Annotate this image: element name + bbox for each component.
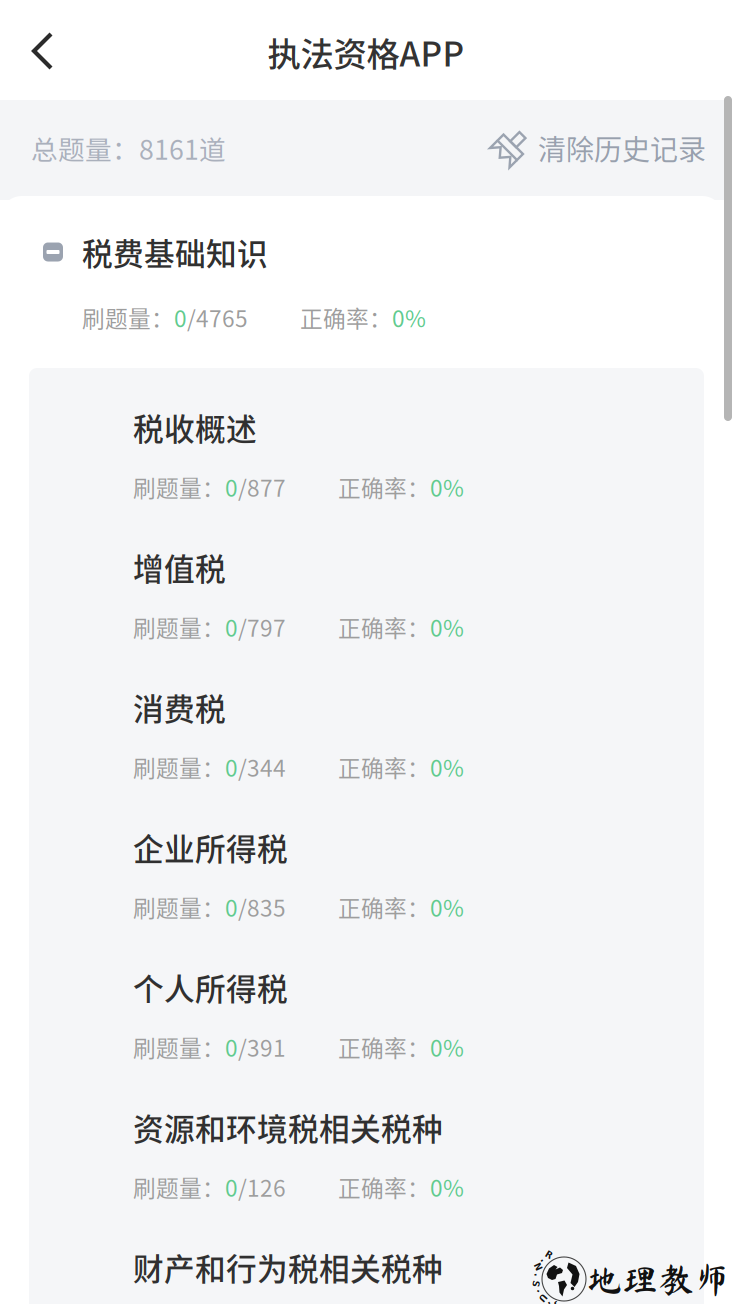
staticText: 0 — [225, 470, 238, 503]
button[interactable]: 税费基础知识 — [0, 237, 700, 267]
button[interactable]: 财产和行为税相关税种 — [133, 1245, 693, 1304]
staticText: /835 — [238, 890, 286, 923]
staticText: N — [534, 1262, 542, 1272]
staticText: · — [534, 1270, 538, 1280]
staticText: 0% — [430, 750, 464, 783]
staticText: 税费基础知识 — [82, 230, 268, 274]
staticText: 刷题量： — [133, 1170, 225, 1203]
staticText: 清除历史记录 — [538, 128, 706, 168]
staticText: 0% — [392, 301, 426, 334]
staticText: 0 — [225, 750, 238, 783]
staticText: 增值税 — [133, 545, 226, 589]
staticText: 正确率： — [338, 890, 430, 923]
staticText: /391 — [238, 1030, 286, 1063]
staticText: 0% — [430, 890, 464, 923]
staticText: 刷题量： — [133, 750, 225, 783]
staticText: /344 — [238, 750, 286, 783]
staticText: 0% — [430, 1030, 464, 1063]
button[interactable]: 税收概述 — [133, 405, 693, 545]
staticText: 正确率： — [338, 1170, 430, 1203]
staticText: J — [555, 1301, 558, 1304]
staticText: 0 — [225, 1170, 238, 1203]
button[interactable]: 企业所得税 — [133, 825, 693, 965]
staticText: 总题量：8161道 — [31, 129, 226, 167]
staticText: 刷题量： — [133, 470, 225, 503]
staticText: S — [532, 1278, 539, 1289]
staticText: · — [536, 1286, 540, 1297]
staticText: 刷题量： — [82, 301, 174, 334]
button[interactable]: 增值税 — [133, 545, 693, 685]
button[interactable]: 消费税 — [133, 685, 693, 825]
staticText: 正确率： — [338, 1030, 430, 1063]
staticText: · — [547, 1298, 551, 1304]
button[interactable]: 个人所得税 — [133, 965, 693, 1105]
staticText: 0 — [225, 610, 238, 643]
staticText: /877 — [238, 470, 286, 503]
staticText: 刷题量： — [133, 890, 225, 923]
staticText: 正确率： — [338, 610, 430, 643]
staticText: 正确率： — [338, 750, 430, 783]
staticText: 财产和行为税相关税种 — [133, 1245, 443, 1289]
staticText: 正确率： — [338, 470, 430, 503]
staticText: 0 — [174, 301, 187, 334]
button[interactable]: 返回 — [0, 10, 54, 90]
staticText: 刷题量： — [133, 610, 225, 643]
staticText: 个人所得税 — [133, 965, 288, 1009]
staticText: /4765 — [187, 301, 248, 334]
staticText: 0% — [430, 1170, 464, 1203]
staticText: 正确率： — [300, 301, 392, 334]
staticText: 0 — [225, 890, 238, 923]
staticText: 刷题量： — [133, 1030, 225, 1063]
staticText: 企业所得税 — [133, 825, 288, 869]
staticText: R — [545, 1249, 552, 1260]
staticText: /797 — [238, 610, 286, 643]
staticText: 税收概述 — [133, 405, 257, 449]
staticText: U — [539, 1293, 547, 1304]
staticText: 地理教师 — [586, 1261, 730, 1297]
button[interactable]: 资源和环境税相关税种 — [133, 1105, 693, 1245]
staticText: · — [540, 1255, 544, 1266]
staticText: 0% — [430, 610, 464, 643]
staticText: 消费税 — [133, 685, 226, 729]
staticText: 资源和环境税相关税种 — [133, 1105, 443, 1149]
button[interactable]: 清除历史记录 — [490, 126, 732, 170]
staticText: /126 — [238, 1170, 286, 1203]
staticText: 0% — [430, 470, 464, 503]
staticText: 0 — [225, 1030, 238, 1063]
staticText: 执法资格APP — [267, 28, 464, 76]
